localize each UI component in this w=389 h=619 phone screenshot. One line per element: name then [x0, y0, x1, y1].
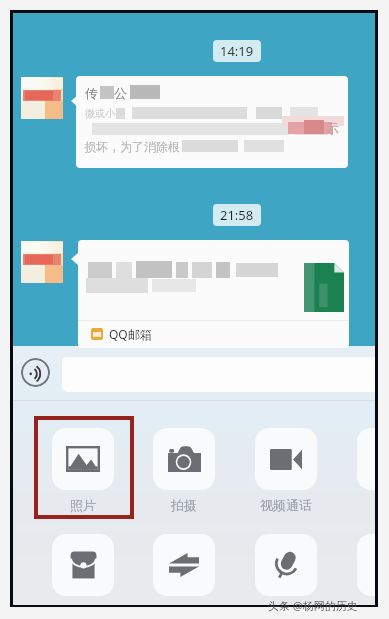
- button[interactable]: [337, 428, 375, 490]
- button[interactable]: Contact avatar: [21, 77, 63, 119]
- staticText: 头条 @杨网的历史: [268, 598, 358, 613]
- button[interactable]: QQ邮箱: [78, 240, 349, 348]
- staticText: 传: [85, 85, 98, 101]
- button[interactable]: 照片: [32, 428, 134, 513]
- staticText: 公: [114, 85, 127, 101]
- button[interactable]: 视频通话: [235, 428, 337, 513]
- staticText: 微或小号: [85, 107, 125, 120]
- button[interactable]: [235, 534, 337, 596]
- staticText: 21:58: [220, 206, 254, 224]
- button[interactable]: Voice message: [21, 358, 50, 387]
- button[interactable]: QQ邮箱: [91, 326, 152, 342]
- staticText: 视频通话: [260, 497, 312, 513]
- staticText: 损坏，为了消除根: [84, 139, 180, 154]
- staticText: 示: [326, 120, 339, 136]
- staticText: 拍摄: [171, 497, 197, 513]
- button[interactable]: [32, 534, 134, 596]
- staticText: 照片: [70, 497, 96, 513]
- button[interactable]: [337, 534, 375, 596]
- button[interactable]: 拍摄: [133, 428, 235, 513]
- button[interactable]: 传: [76, 76, 348, 168]
- button[interactable]: Contact avatar: [21, 241, 63, 283]
- staticText: QQ邮箱: [109, 326, 152, 342]
- button[interactable]: [133, 534, 235, 596]
- staticText: 14:19: [220, 42, 254, 60]
